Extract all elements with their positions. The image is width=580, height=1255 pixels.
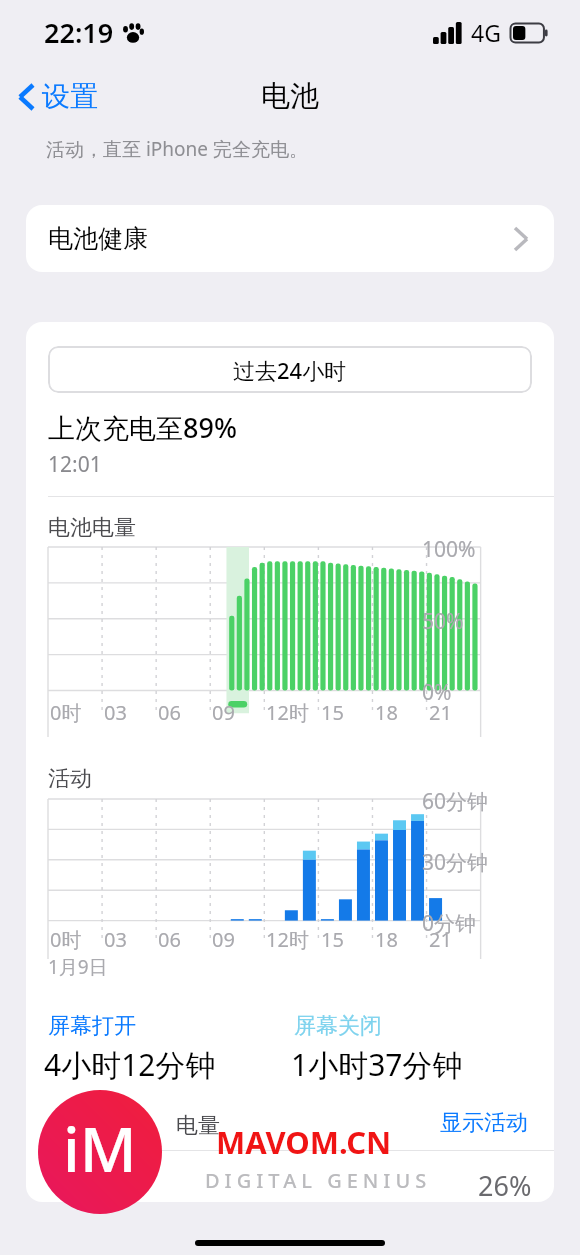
staticText: 12时 — [266, 699, 309, 726]
staticText: 60分钟 — [422, 787, 489, 816]
staticText: 显示活动 — [440, 1109, 528, 1137]
staticText: 06 — [158, 699, 181, 726]
staticText: 21 — [429, 926, 452, 953]
staticText: 0分钟 — [422, 909, 477, 938]
staticText: 09 — [212, 926, 235, 953]
staticText: 活动 — [48, 765, 92, 793]
staticText: 12:01 — [48, 450, 102, 479]
button[interactable]: 显示活动 — [436, 1105, 532, 1141]
staticText: 0时 — [50, 926, 82, 953]
staticText: 0% — [422, 678, 452, 707]
staticText: 设置 — [42, 79, 98, 114]
staticText: 电池电量 — [48, 514, 136, 542]
staticText: 4G — [471, 17, 501, 48]
staticText: 15 — [321, 926, 344, 953]
staticText: 50% — [422, 607, 464, 636]
staticText: 100% — [422, 535, 476, 564]
staticText: 18 — [375, 699, 398, 726]
staticText: 30分钟 — [422, 848, 489, 877]
staticText: 屏幕打开 — [48, 1012, 136, 1040]
staticText: 21 — [429, 699, 452, 726]
staticText: 电池 — [261, 78, 319, 115]
staticText: 屏幕关闭 — [294, 1012, 382, 1040]
staticText: iM — [63, 1106, 137, 1190]
button[interactable]: 过去24小时 — [48, 346, 532, 393]
staticText: 1小时37分钟 — [291, 1044, 463, 1085]
staticText: 03 — [104, 926, 127, 953]
staticText: 09 — [212, 699, 235, 726]
staticText: 活动，直至 iPhone 完全充电。 — [46, 136, 308, 162]
staticText: 15 — [321, 699, 344, 726]
staticText: 电量 — [176, 1112, 220, 1140]
staticText: 03 — [104, 699, 127, 726]
staticText: 电池健康 — [48, 223, 148, 254]
button[interactable]: 电池健康 — [26, 205, 554, 272]
staticText: MAVOM.CN — [216, 1121, 392, 1163]
staticText: 上次充电至89% — [48, 409, 237, 446]
staticText: 12时 — [266, 926, 309, 953]
staticText: 22:19 — [44, 14, 114, 51]
staticText: 0时 — [50, 699, 82, 726]
staticText: 1月9日 — [48, 954, 108, 980]
button[interactable]: 设置 — [0, 73, 108, 120]
staticText: 过去24小时 — [233, 355, 347, 385]
staticText: DIGITAL GENIUS — [205, 1167, 432, 1194]
staticText: 4小时12分钟 — [44, 1044, 216, 1085]
staticText: 26% — [478, 1167, 532, 1202]
staticText: 18 — [375, 926, 398, 953]
staticText: 06 — [158, 926, 181, 953]
